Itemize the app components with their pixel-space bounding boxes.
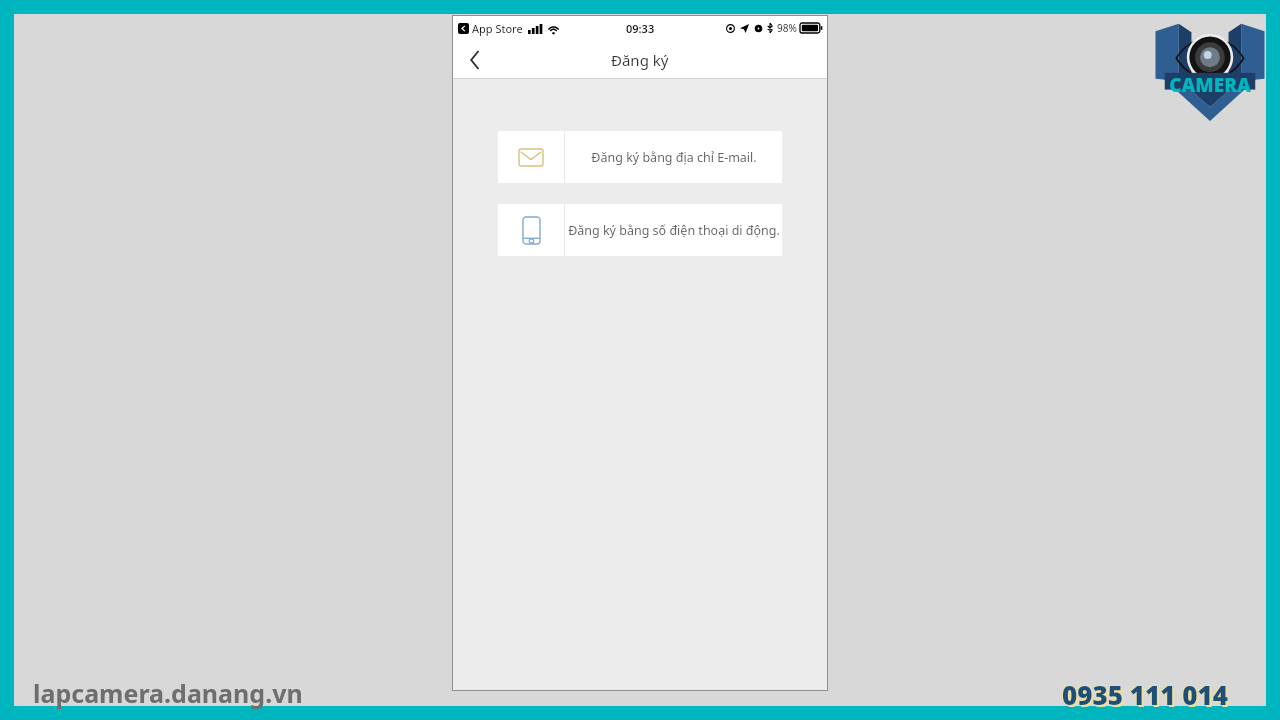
button[interactable]: Back bbox=[453, 40, 497, 79]
staticText: Đăng ký bằng số điện thoại di động. bbox=[568, 222, 780, 239]
button[interactable]: Đăng ký bằng số điện thoại di động. bbox=[498, 204, 782, 256]
staticText: lapcamera.danang.vn bbox=[33, 676, 303, 710]
staticText: 0935 111 014 bbox=[1061, 676, 1227, 711]
staticText: 0935 111 014 bbox=[1062, 677, 1228, 712]
staticText: 98% bbox=[777, 21, 797, 35]
staticText: 0935 111 014 bbox=[1064, 679, 1230, 714]
staticText: CAMERA bbox=[1152, 72, 1268, 98]
staticText: Đăng ký bằng địa chỉ E-mail. bbox=[591, 149, 757, 166]
staticText: 09:33 bbox=[626, 21, 655, 36]
staticText: App Store bbox=[472, 21, 523, 36]
staticText: Đăng ký bbox=[611, 50, 669, 70]
button[interactable]: Đăng ký bằng địa chỉ E-mail. bbox=[498, 131, 782, 183]
